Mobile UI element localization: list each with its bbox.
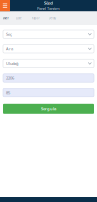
staticText: User [2,16,8,20]
button[interactable]: Menu [0,0,10,11]
staticText: Sorgula [41,106,56,111]
button[interactable]: Uludağ [3,59,94,68]
staticText: Detay [48,16,55,20]
staticText: Panel Tanıtım [37,6,60,11]
staticText: Rapor [31,16,39,20]
staticText: Liste [16,16,22,20]
staticText: Ara [6,46,13,51]
staticText: 85 [6,90,10,95]
button[interactable]: 2206 [3,74,94,82]
button[interactable]: Sorgula [3,104,94,114]
staticText: 2206 [6,75,14,81]
button[interactable]: 85 [3,88,94,97]
button[interactable]: Rapor [27,11,44,25]
button[interactable]: User [0,11,11,25]
staticText: Uludağ [6,61,18,66]
staticText: Sözel [44,0,53,6]
button[interactable]: Ara [3,45,94,53]
button[interactable]: Seç [3,30,94,38]
button[interactable]: Liste [11,11,27,25]
staticText: Seç [6,31,12,37]
button[interactable]: Detay [44,11,60,25]
